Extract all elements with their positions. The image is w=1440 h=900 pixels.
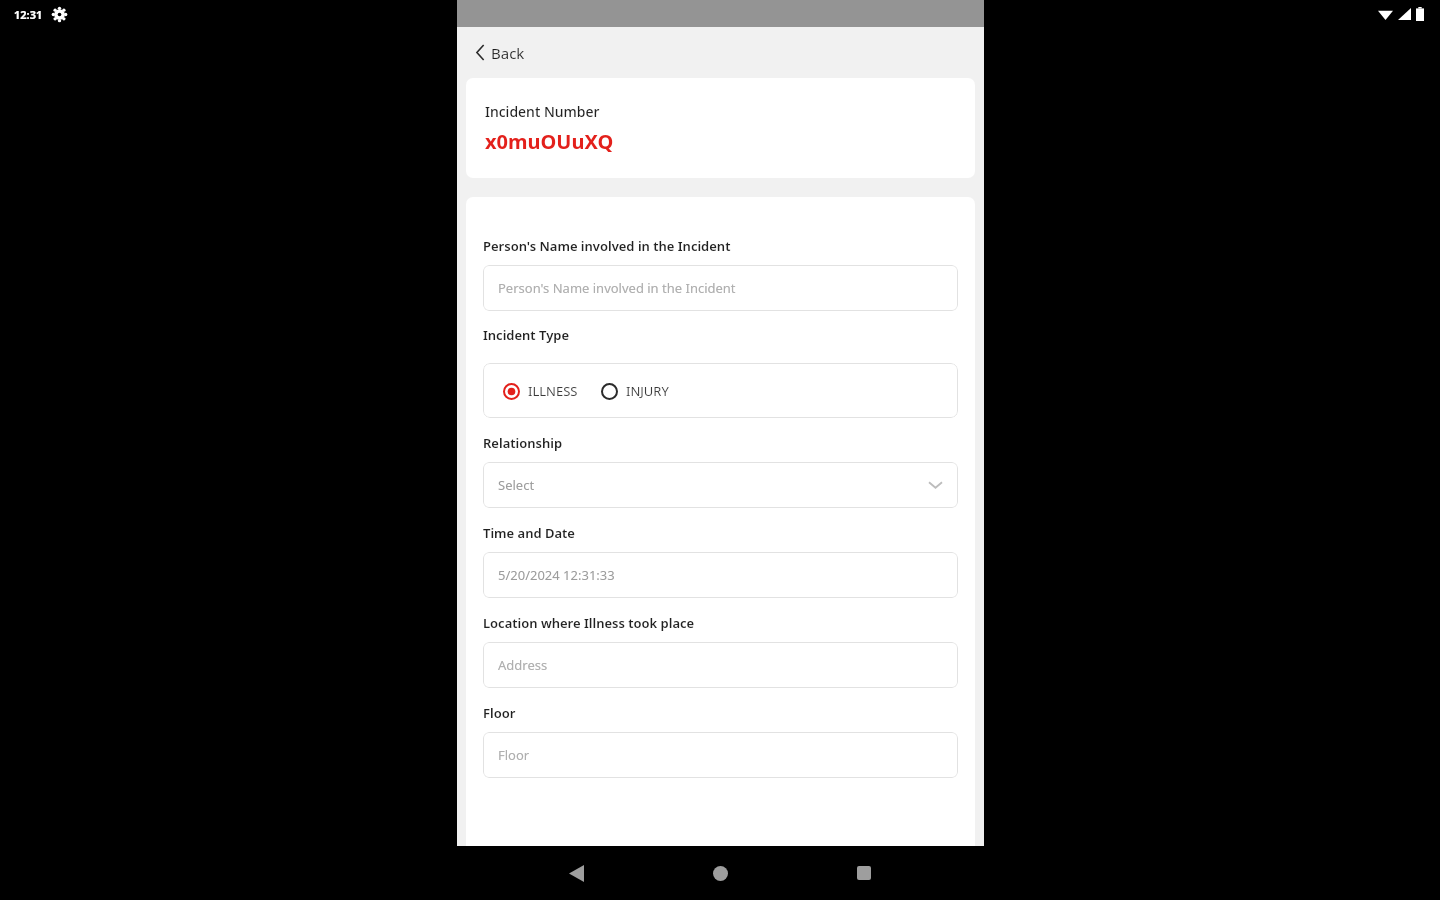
button[interactable]: Recent apps [794,846,934,900]
button[interactable]: Home [646,846,794,900]
staticText: x0muOUuXQ [485,128,614,155]
staticText: Relationship [483,434,563,452]
button[interactable]: Back [506,846,646,900]
staticText: Time and Date [483,524,575,542]
button[interactable]: 5/20/2024 12:31:33 [483,552,958,598]
staticText: INJURY [626,382,669,400]
staticText: Person's Name involved in the Incident [483,237,731,255]
staticText: ILLNESS [528,382,578,400]
staticText: Address [498,656,548,674]
staticText: 12:31 [14,7,43,22]
staticText: Floor [498,746,530,764]
staticText: 5/20/2024 12:31:33 [498,566,615,584]
staticText: Incident Type [483,326,570,344]
staticText: Incident Number [485,102,600,121]
staticText: Back [491,43,525,63]
button[interactable]: Floor [483,732,958,778]
button[interactable]: Select [483,462,958,508]
staticText: Floor [483,704,516,722]
button[interactable]: INJURY [601,382,669,400]
staticText: Select [498,476,535,494]
staticText: Person's Name involved in the Incident [498,279,736,297]
button[interactable]: Person's Name involved in the Incident [483,265,958,311]
button[interactable]: Address [483,642,958,688]
staticText: Location where Illness took place [483,614,695,632]
button[interactable]: Back [457,27,984,78]
button[interactable]: ILLNESS [503,382,578,400]
